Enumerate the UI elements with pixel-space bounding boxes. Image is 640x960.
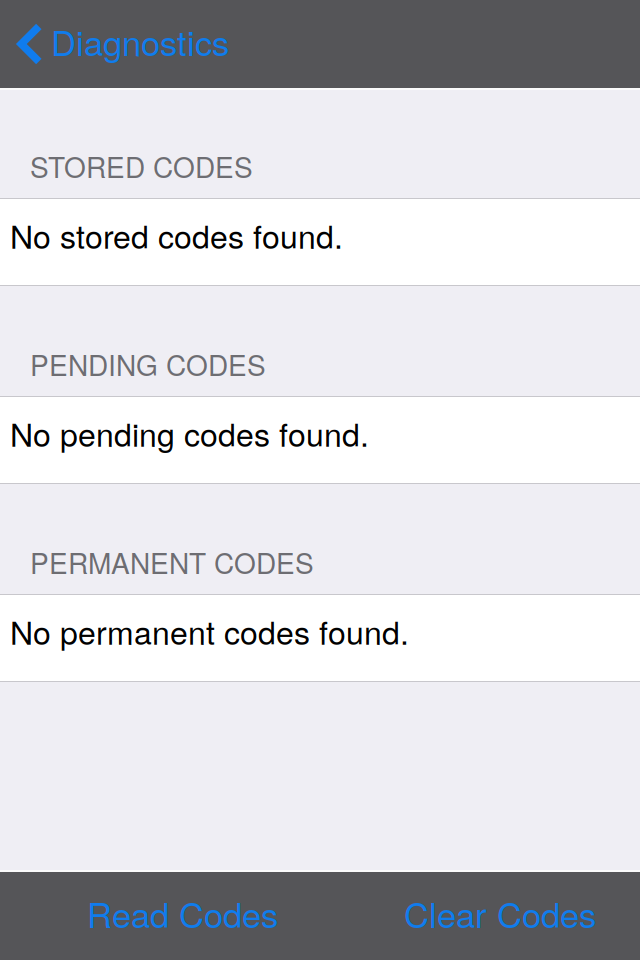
staticText: No stored codes found. <box>10 212 343 258</box>
staticText: Diagnostics <box>51 16 229 66</box>
button[interactable]: Clear Codes <box>388 872 612 960</box>
staticText: No pending codes found. <box>10 410 369 456</box>
staticText: No permanent codes found. <box>10 608 409 654</box>
staticText: PERMANENT CODES <box>30 542 314 582</box>
staticText: Read Codes <box>87 888 278 938</box>
button[interactable]: Diagnostics <box>0 0 241 88</box>
button[interactable]: Read Codes <box>71 872 294 960</box>
staticText: STORED CODES <box>30 146 253 186</box>
staticText: PENDING CODES <box>30 344 266 384</box>
staticText: Clear Codes <box>404 888 596 938</box>
